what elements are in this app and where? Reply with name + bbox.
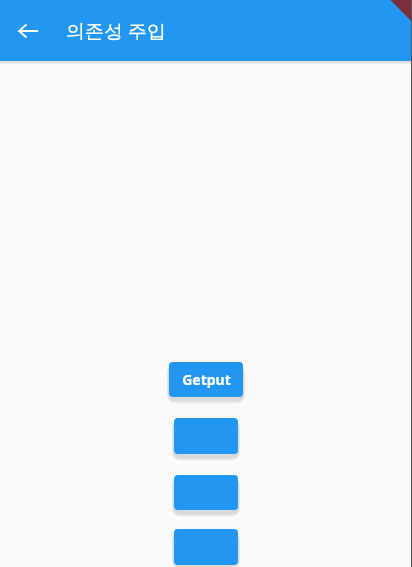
button[interactable]: Back <box>8 11 48 51</box>
button[interactable]: Action button <box>174 475 238 510</box>
button[interactable]: Action button <box>174 529 238 565</box>
staticText: 의존성 주입 <box>66 18 166 44</box>
button[interactable]: Getput <box>169 362 243 397</box>
button[interactable]: Action button <box>174 418 238 454</box>
staticText: Getput <box>182 370 231 389</box>
